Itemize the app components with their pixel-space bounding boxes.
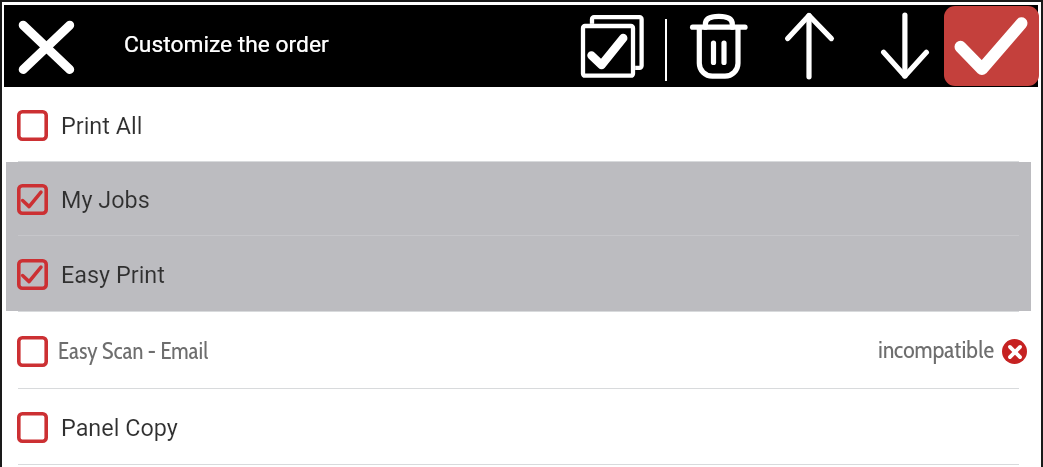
staticText: Panel Copy: [61, 414, 178, 441]
staticText: incompatible: [878, 335, 995, 364]
staticText: Easy Scan - Email: [58, 337, 209, 365]
staticText: Print All: [61, 112, 143, 139]
button[interactable]: Move up: [779, 10, 849, 87]
button[interactable]: Select all: [576, 11, 658, 87]
staticText: Easy Print: [61, 261, 165, 288]
button[interactable]: Close: [12, 13, 80, 81]
button[interactable]: Panel Copy: [6, 389, 1031, 464]
staticText: My Jobs: [61, 186, 150, 213]
button[interactable]: Done: [944, 6, 1039, 86]
button[interactable]: Delete: [689, 14, 753, 88]
button[interactable]: Easy Print: [6, 236, 1031, 311]
button[interactable]: Easy Scan - Email: [6, 312, 1031, 388]
button[interactable]: Print All: [6, 87, 1031, 161]
staticText: Customize the order: [124, 31, 329, 58]
button[interactable]: My Jobs: [6, 162, 1031, 235]
button[interactable]: Move down: [875, 10, 945, 87]
